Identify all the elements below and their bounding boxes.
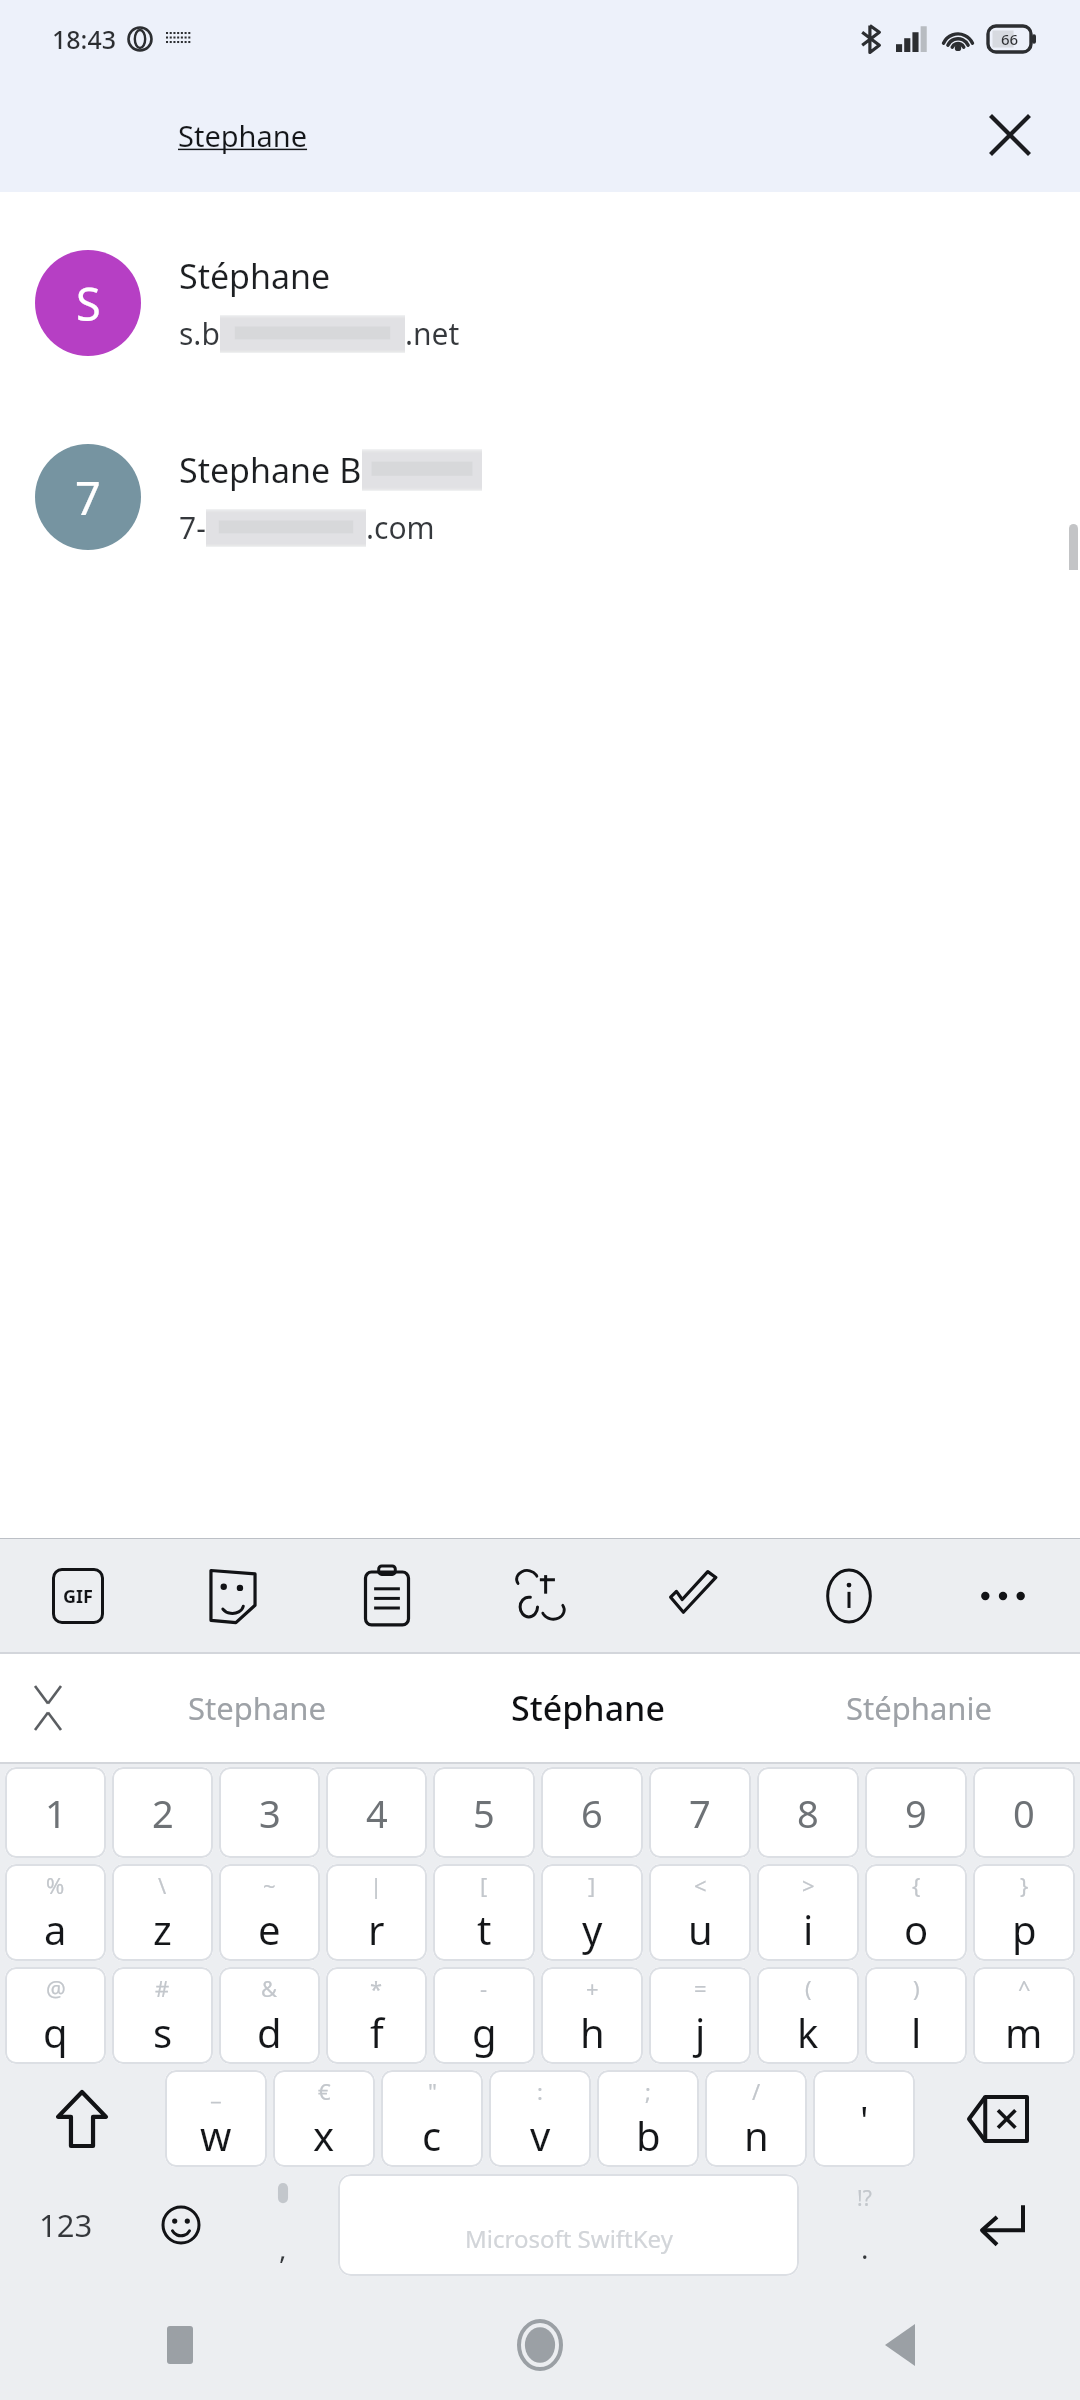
staticText: 3 [259, 1787, 281, 1839]
button[interactable]: } [973, 1864, 1075, 1961]
button[interactable]: Clear search [962, 87, 1058, 183]
button[interactable]: Recent apps [0, 2290, 360, 2400]
staticText: GIF [63, 1584, 93, 1609]
button[interactable]: < [649, 1864, 751, 1961]
staticText: S [76, 273, 101, 334]
button[interactable]: Emoji [130, 2174, 232, 2276]
staticText: h [580, 2005, 605, 2059]
button[interactable]: Stephane [178, 116, 962, 155]
button[interactable]: 4 [326, 1767, 427, 1858]
button[interactable]: = [649, 1967, 751, 2064]
staticText: d [257, 2005, 282, 2059]
button[interactable]: 9 [865, 1767, 967, 1858]
staticText: 5 [473, 1787, 495, 1839]
button[interactable]: / [705, 2070, 807, 2167]
staticText: [ [480, 1870, 488, 1900]
staticText: m [1005, 2005, 1043, 2059]
button[interactable]: * [326, 1967, 427, 2064]
button[interactable]: ] [541, 1864, 643, 1961]
button[interactable]: % [5, 1864, 106, 1961]
staticText: n [744, 2108, 769, 2162]
button[interactable]: 8 [757, 1767, 859, 1858]
button[interactable]: [ [433, 1864, 535, 1961]
staticText: Stephane [188, 1687, 326, 1729]
button[interactable]: clipboard [310, 1539, 464, 1652]
staticText: > [802, 1870, 815, 1900]
staticText: 6 [581, 1787, 603, 1839]
staticText: Stéphane [511, 1685, 665, 1731]
staticText: !? [857, 2184, 872, 2213]
staticText: o [904, 1902, 929, 1956]
staticText: z [153, 1902, 172, 1956]
button[interactable]: { [865, 1864, 967, 1961]
button[interactable]: ; [597, 2070, 699, 2167]
button[interactable]: translate [464, 1539, 618, 1652]
button[interactable]: > [757, 1864, 859, 1961]
staticText: & [261, 1973, 278, 2003]
staticText: e [258, 1902, 281, 1956]
button[interactable]: Home [360, 2290, 720, 2400]
button[interactable]: : [489, 2070, 591, 2167]
button[interactable]: more [926, 1539, 1080, 1652]
staticText: | [370, 1870, 383, 1900]
staticText: g [472, 2005, 497, 2059]
button[interactable]: ( [757, 1967, 859, 2064]
button[interactable]: Back [720, 2290, 1080, 2400]
staticText: s [153, 2005, 173, 2059]
staticText: ' [860, 2093, 869, 2145]
staticText: 66 [1001, 29, 1019, 49]
button[interactable]: ~ [219, 1864, 320, 1961]
button[interactable]: 7 [649, 1767, 751, 1858]
button[interactable]: Collapse suggestions [0, 1654, 96, 1762]
button[interactable]: Space [338, 2174, 799, 2276]
button[interactable]: 0 [973, 1767, 1075, 1858]
staticText: ^ [1018, 1973, 1031, 2003]
button[interactable]: 3 [219, 1767, 320, 1858]
button[interactable]: Stephane [96, 1654, 418, 1762]
staticText: 7- [179, 507, 206, 548]
button[interactable]: # [112, 1967, 213, 2064]
staticText: } [1020, 1870, 1029, 1900]
button[interactable]: | [326, 1864, 427, 1961]
button[interactable]: 6 [541, 1767, 643, 1858]
staticText: f [370, 2005, 384, 2059]
button[interactable]: Stéphanie [757, 1654, 1080, 1762]
button[interactable]: 1 [5, 1767, 106, 1858]
button[interactable]: 2 [112, 1767, 213, 1858]
staticText: 1 [45, 1787, 67, 1839]
button[interactable]: Shift [2, 2070, 162, 2167]
staticText: p [1012, 1902, 1037, 1956]
button[interactable]: Stéphane contact [0, 206, 1080, 400]
button[interactable]: ^ [973, 1967, 1075, 2064]
button[interactable]: 123 [2, 2174, 130, 2276]
button[interactable]: + [541, 1967, 643, 2064]
staticText: Stéphanie [846, 1687, 992, 1729]
button[interactable]: - [433, 1967, 535, 2064]
button[interactable]: & [219, 1967, 320, 2064]
button[interactable]: !? [803, 2174, 925, 2276]
staticText: k [797, 2005, 819, 2059]
button[interactable]: Stephane B contact [0, 400, 1080, 594]
button[interactable]: @ [5, 1967, 106, 2064]
staticText: ( [805, 1973, 812, 2003]
button[interactable]: Stéphane [418, 1654, 757, 1762]
button[interactable]: Backspace [918, 2070, 1078, 2167]
button[interactable]: \ [112, 1864, 213, 1961]
staticText: x [313, 2108, 335, 2162]
button[interactable]: " [381, 2070, 483, 2167]
button[interactable]: Enter [925, 2174, 1078, 2276]
button[interactable]: 5 [433, 1767, 535, 1858]
button[interactable]: € [273, 2070, 375, 2167]
staticText: v [530, 2108, 551, 2162]
staticText: r [368, 1902, 385, 1956]
staticText: i [803, 1902, 814, 1956]
staticText: < [694, 1870, 707, 1900]
button[interactable]: info [772, 1539, 926, 1652]
button[interactable]: _ [165, 2070, 267, 2167]
button[interactable]: ) [865, 1967, 967, 2064]
button[interactable]: ' [813, 2070, 915, 2167]
button[interactable]: Voice input [232, 2174, 334, 2276]
button[interactable]: sticker [155, 1539, 310, 1652]
button[interactable]: editor [618, 1539, 772, 1652]
button[interactable]: GIF [0, 1539, 155, 1652]
